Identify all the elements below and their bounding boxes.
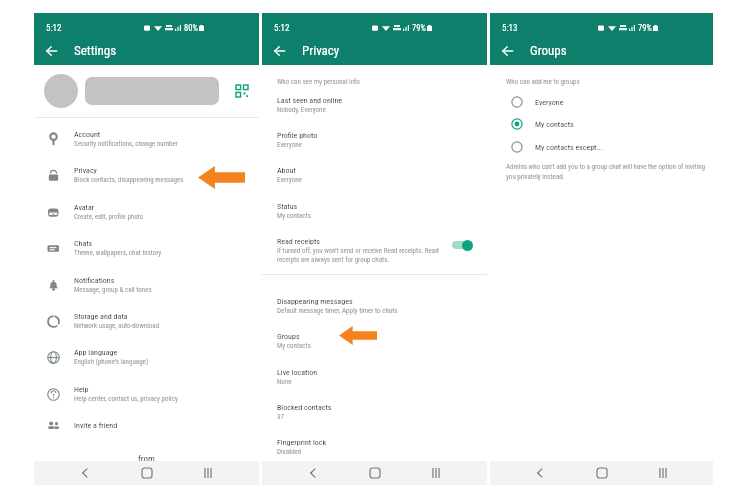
staticText: My contacts (277, 342, 311, 350)
staticText: Blocked contacts (277, 403, 332, 412)
button[interactable]: Read receipts (277, 237, 443, 264)
button[interactable]: Home (591, 462, 613, 484)
staticText: Groups (277, 332, 300, 341)
staticText: 80% (184, 23, 198, 33)
staticText: Disabled (277, 448, 301, 456)
staticText: Network usage, auto-download (74, 322, 160, 330)
staticText: Message, group & call tones (74, 286, 152, 294)
button[interactable]: Profile photo (262, 130, 487, 163)
staticText: Account (74, 130, 101, 139)
button[interactable]: Invite a friend (34, 408, 259, 442)
button[interactable]: QR code (34, 65, 259, 117)
button[interactable]: My contacts except... (490, 136, 713, 158)
staticText: 5:12 (46, 23, 62, 34)
staticText: Security notifications, change number (74, 140, 178, 148)
staticText: Read receipts (277, 237, 320, 246)
staticText: Help (74, 385, 89, 394)
staticText: My contacts (535, 120, 574, 129)
staticText: Who can add me to groups (506, 78, 580, 86)
staticText: Admins who can't add you to a group chat… (506, 163, 706, 180)
button[interactable]: Account (34, 122, 259, 156)
staticText: 5:13 (502, 23, 518, 34)
button[interactable]: App language (34, 340, 259, 374)
button[interactable]: About (262, 165, 487, 198)
button[interactable]: Home (364, 462, 386, 484)
button[interactable]: My contacts (490, 113, 713, 135)
staticText: Theme, wallpapers, chat history (74, 249, 162, 257)
button[interactable]: Back (496, 40, 518, 62)
button[interactable]: Live location (262, 367, 487, 400)
staticText: Everyone (277, 141, 302, 149)
staticText: About (277, 166, 296, 175)
staticText: None (277, 378, 292, 386)
staticText: Chats (74, 239, 93, 248)
staticText: Help center, contact us, privacy policy (74, 395, 178, 403)
button[interactable]: Status (262, 201, 487, 234)
button[interactable]: Disappearing messages (262, 296, 487, 329)
staticText: If turned off, you won't send or receive… (277, 247, 443, 264)
staticText: Settings (74, 43, 117, 58)
button[interactable]: Chats (34, 231, 259, 265)
staticText: from (138, 454, 155, 465)
staticText: Live location (277, 368, 318, 377)
staticText: Everyone (277, 176, 302, 184)
staticText: Block contacts, disappearing messages (74, 176, 184, 184)
button[interactable]: Back (40, 40, 62, 62)
button[interactable]: Avatar (34, 195, 259, 229)
button[interactable]: Read receipts toggle (452, 239, 476, 251)
button[interactable]: Recent apps (425, 462, 447, 484)
staticText: Profile photo (277, 131, 318, 140)
button[interactable]: Recent apps (652, 462, 674, 484)
button[interactable]: Back (302, 462, 324, 484)
staticText: Nobody, Everyone (277, 106, 326, 114)
staticText: 79% (412, 23, 426, 33)
button[interactable]: Back (74, 462, 96, 484)
staticText: Invite a friend (74, 421, 118, 430)
button[interactable]: Privacy (34, 158, 259, 192)
staticText: 79% (638, 23, 652, 33)
staticText: App language (74, 348, 118, 357)
button[interactable]: Recent apps (197, 462, 219, 484)
button[interactable]: Last seen and online (262, 95, 487, 128)
staticText: Storage and data (74, 312, 128, 321)
staticText: Notifications (74, 276, 115, 285)
button[interactable]: Notifications (34, 268, 259, 302)
staticText: Who can see my personal info (277, 78, 360, 86)
staticText: 37 (277, 413, 284, 421)
button[interactable]: Storage and data (34, 304, 259, 338)
button[interactable]: Help (34, 377, 259, 411)
staticText: Default message timer, Apply timer to ch… (277, 307, 398, 315)
button[interactable]: Back (268, 40, 290, 62)
staticText: Disappearing messages (277, 297, 353, 306)
staticText: Last seen and online (277, 96, 343, 105)
staticText: Create, edit, profile photo (74, 213, 144, 221)
staticText: Groups (530, 43, 567, 58)
staticText: Status (277, 202, 298, 211)
staticText: My contacts except... (535, 143, 603, 152)
staticText: Privacy (74, 166, 97, 175)
staticText: Fingerprint lock (277, 438, 327, 447)
button[interactable]: Back (529, 462, 551, 484)
button[interactable]: Blocked contacts (262, 402, 487, 435)
staticText: Avatar (74, 203, 95, 212)
staticText: English (phone's language) (74, 358, 149, 366)
button[interactable]: Everyone (490, 91, 713, 113)
button[interactable]: Groups (262, 331, 487, 364)
button[interactable]: QR code (233, 82, 251, 100)
button[interactable]: Fingerprint lock (262, 437, 487, 470)
button[interactable]: Home (136, 462, 158, 484)
staticText: Privacy (302, 43, 340, 58)
staticText: Everyone (535, 98, 564, 107)
staticText: My contacts (277, 212, 311, 220)
staticText: 5:12 (274, 23, 290, 34)
